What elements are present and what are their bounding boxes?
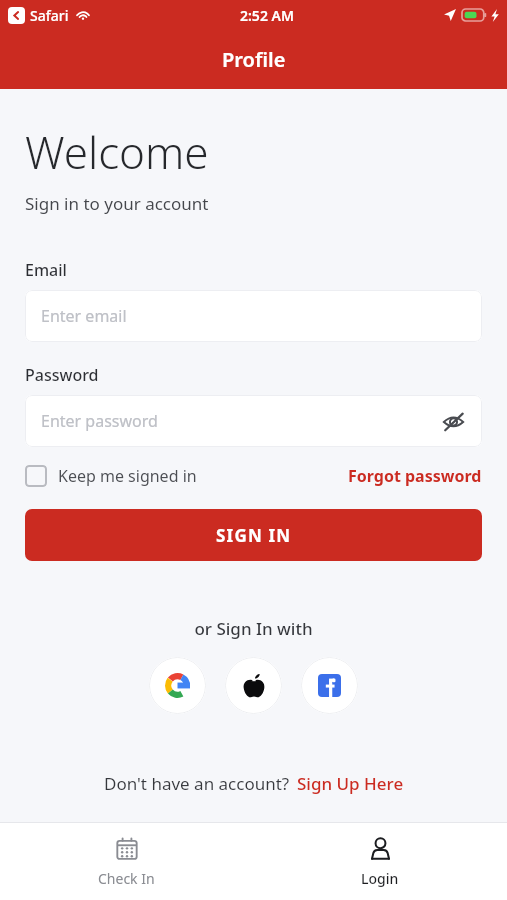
- button[interactable]: Sign in with Apple: [225, 657, 282, 714]
- button[interactable]: SIGN IN: [25, 509, 482, 561]
- staticText: Enter password: [41, 410, 158, 432]
- staticText: Sign in to your account: [25, 192, 209, 215]
- button[interactable]: Keep me signed in: [25, 465, 197, 487]
- button[interactable]: Show password: [436, 404, 470, 438]
- staticText: Sign Up Here: [297, 772, 404, 795]
- staticText: Don't have an account?: [104, 772, 290, 795]
- staticText: Enter email: [41, 305, 127, 327]
- button[interactable]: Sign in with Facebook: [301, 657, 358, 714]
- staticText: Check In: [98, 869, 155, 888]
- staticText: Password: [25, 364, 99, 386]
- staticText: or Sign In with: [0, 617, 507, 640]
- staticText: Login: [361, 869, 399, 888]
- button[interactable]: Enter password: [25, 395, 482, 447]
- staticText: Safari: [30, 6, 69, 25]
- staticText: 2:52 AM: [240, 6, 294, 25]
- staticText: Welcome: [25, 122, 209, 182]
- button[interactable]: Sign in with Google: [149, 657, 206, 714]
- button[interactable]: Forgot password: [348, 465, 482, 487]
- button[interactable]: Check In: [0, 822, 253, 900]
- staticText: Email: [25, 259, 67, 281]
- button[interactable]: Login: [253, 822, 507, 900]
- staticText: Profile: [222, 46, 286, 73]
- button[interactable]: Enter email: [25, 290, 482, 342]
- staticText: SIGN IN: [216, 524, 292, 547]
- button[interactable]: Sign Up Here: [297, 772, 404, 795]
- staticText: Keep me signed in: [58, 465, 197, 487]
- staticText: Forgot password: [348, 465, 482, 487]
